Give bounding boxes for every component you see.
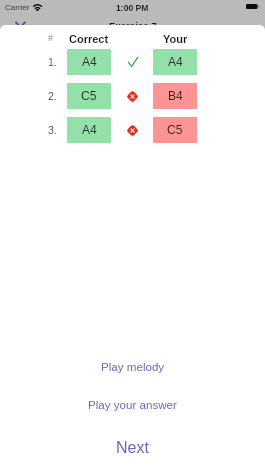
staticText: 1. <box>48 56 57 68</box>
staticText: Your <box>163 33 188 45</box>
staticText: Play melody <box>101 360 165 373</box>
staticText: A4 <box>168 55 183 69</box>
staticText: 3. <box>48 124 57 136</box>
staticText: B4 <box>168 89 183 103</box>
staticText: # <box>48 33 54 43</box>
staticText: 1:00 PM <box>116 3 149 13</box>
staticText: Correct <box>69 33 109 45</box>
button[interactable]: 1. <box>0 49 265 75</box>
staticText: Carrier <box>5 3 30 12</box>
staticText: Exercise 7 <box>109 20 157 31</box>
button[interactable]: Next <box>0 431 265 465</box>
staticText: Next <box>116 439 149 457</box>
staticText: A4 <box>82 123 97 137</box>
button[interactable]: Back <box>12 15 28 31</box>
button[interactable]: Play melody <box>0 352 265 380</box>
staticText: C5 <box>167 123 183 137</box>
button[interactable]: Play your answer <box>0 390 265 418</box>
button[interactable]: 2. <box>0 83 265 109</box>
button[interactable]: 3. <box>0 117 265 143</box>
staticText: Play your answer <box>88 398 177 411</box>
staticText: 2. <box>48 90 57 102</box>
staticText: A4 <box>82 55 97 69</box>
staticText: C5 <box>81 89 97 103</box>
